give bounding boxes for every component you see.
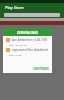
staticText: Ace Ambience v1.46.7.08	[12, 38, 47, 42]
button[interactable]: CONTINUE	[33, 67, 49, 71]
staticText: size : 22.68 MB	[9, 43, 27, 46]
staticText: expansion files download	[12, 48, 48, 52]
staticText: size : 8 MB	[9, 53, 22, 56]
staticText: Play Store	[5, 5, 24, 10]
staticText: DOWNLOAD	[17, 30, 39, 35]
